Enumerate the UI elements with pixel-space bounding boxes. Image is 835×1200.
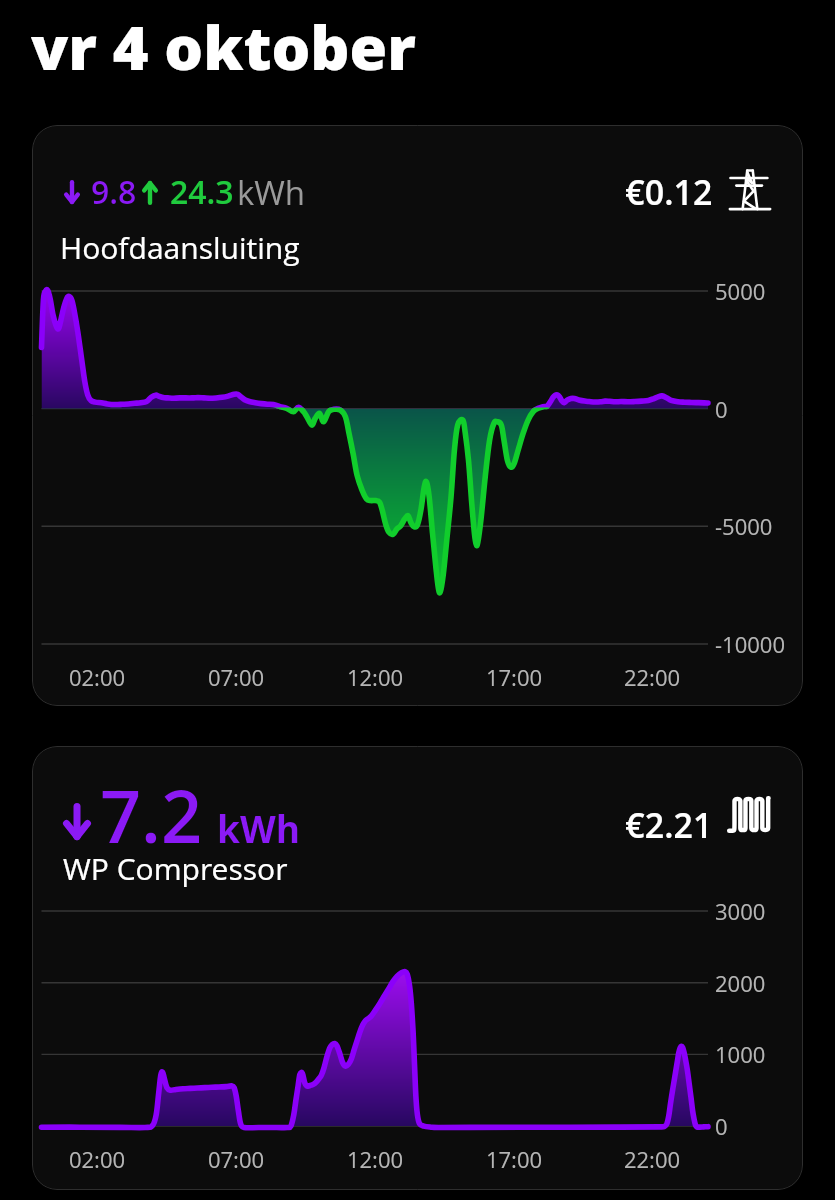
- staticText: 9.8: [91, 170, 137, 214]
- staticText: 7.2: [100, 766, 202, 864]
- other: Heat pump: [727, 792, 772, 837]
- staticText: WP Compressor: [63, 848, 288, 889]
- button[interactable]: 9.8: [32, 125, 803, 706]
- staticText: 02:00: [47, 1144, 147, 1174]
- staticText: -10000: [715, 629, 785, 659]
- staticText: 17:00: [464, 662, 564, 692]
- staticText: 0: [715, 1111, 728, 1141]
- staticText: 02:00: [47, 662, 147, 692]
- staticText: 22:00: [602, 1144, 702, 1174]
- staticText: Hoofdaansluiting: [60, 227, 300, 268]
- staticText: 1000: [715, 1039, 766, 1069]
- staticText: kWh: [217, 803, 301, 853]
- staticText: €2.21: [625, 802, 713, 848]
- staticText: 22:00: [602, 662, 702, 692]
- staticText: kWh: [237, 170, 306, 215]
- staticText: 17:00: [464, 1144, 564, 1174]
- staticText: 12:00: [325, 1144, 425, 1174]
- staticText: 07:00: [186, 1144, 286, 1174]
- staticText: vr 4 oktober: [31, 5, 416, 88]
- staticText: 24.3: [170, 170, 234, 214]
- staticText: 3000: [715, 896, 766, 926]
- button[interactable]: 7.2: [32, 746, 803, 1190]
- staticText: -5000: [715, 511, 773, 541]
- other: Grid connection: [729, 169, 771, 211]
- staticText: 5000: [715, 276, 766, 306]
- staticText: 12:00: [325, 662, 425, 692]
- staticText: €0.12: [625, 169, 713, 215]
- staticText: 0: [715, 394, 728, 424]
- staticText: 07:00: [186, 662, 286, 692]
- staticText: 2000: [715, 968, 766, 998]
